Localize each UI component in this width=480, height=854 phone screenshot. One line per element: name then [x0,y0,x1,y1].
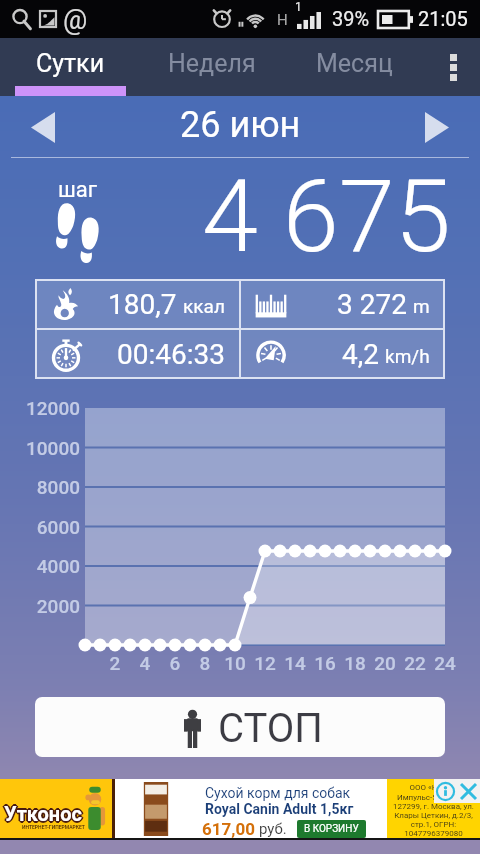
staticText: 21:05 [418,7,468,30]
staticText: ккал [183,295,225,317]
staticText: Утконос [4,800,82,823]
staticText: 20 [370,652,400,674]
staticText: Утконос [4,802,82,825]
staticText: 617,00 [202,819,255,839]
staticText: Утконос [4,803,82,826]
staticText: Утконос [3,803,81,826]
button[interactable]: Сутки [0,38,140,96]
staticText: 26 июн [180,104,301,146]
staticText: 1 [295,0,302,14]
staticText: Утконос [5,802,83,825]
staticText: 10000 [0,437,80,459]
staticText: 4 675 [202,157,451,275]
staticText: Утконос [5,803,83,826]
staticText: 4,2 [342,338,379,371]
button[interactable]: 00:46:33 [36,330,239,378]
staticText: 2 [100,652,130,674]
button[interactable]: 3 272 [241,280,444,328]
staticText: Неделя [168,49,256,78]
staticText: 8000 [0,476,80,498]
button[interactable]: Close ad [457,780,480,803]
staticText: 18 [340,652,370,674]
staticText: Сутки [36,49,105,78]
staticText: 180,7 [108,288,177,321]
staticText: 6 [160,652,190,674]
staticText: СТОП [218,705,323,752]
staticText: Утконос [6,802,84,825]
staticText: 24 [430,652,460,674]
staticText: 14 [280,652,310,674]
staticText: Утконос [4,801,82,824]
staticText: Утконос [2,802,80,825]
staticText: ИНТЕРНЕТ-ГИПЕРМАРКЕТ [22,824,85,830]
staticText: 00:46:33 [117,338,225,371]
staticText: 39% [332,7,370,30]
button[interactable]: Неделя [140,38,283,96]
staticText: шаг [58,177,98,203]
staticText: 6000 [0,516,80,538]
staticText: Royal Canin Adult 1,5кг [205,801,354,817]
staticText: Утконос [3,801,81,824]
button[interactable]: More options [426,38,480,96]
button[interactable]: Месяц [283,38,426,96]
staticText: Месяц [316,49,393,78]
staticText: 22 [400,652,430,674]
button[interactable]: 180,7 [36,280,239,328]
staticText: @ [63,4,88,36]
staticText: руб. [259,820,287,838]
button[interactable]: В КОРЗИНУ [304,823,359,835]
staticText: 12 [250,652,280,674]
button[interactable]: 4,2 [241,330,444,378]
staticText: В КОРЗИНУ [304,823,359,835]
button[interactable]: Next day [416,106,458,148]
staticText: 2000 [0,595,80,617]
button[interactable]: СТОП [35,697,445,757]
staticText: Утконос [5,801,83,824]
staticText: 4 [130,652,160,674]
staticText: ООО «Новый Импульс-50» ЮЛ/А: 127299, г. … [388,783,479,837]
staticText: 8 [190,652,220,674]
staticText: 3 272 [337,288,407,321]
staticText: Утконос [4,804,82,827]
staticText: 16 [310,652,340,674]
button[interactable]: Утконос [0,779,480,840]
button[interactable]: Ad info [434,780,457,803]
staticText: Сухой корм для собак [205,785,351,801]
staticText: 4000 [0,555,80,577]
staticText: 12000 [0,397,80,419]
staticText: H [277,11,288,29]
staticText: Утконос [3,802,81,825]
staticText: m [413,295,430,317]
button[interactable]: Previous day [22,106,64,148]
staticText: km/h [385,345,430,367]
staticText: 10 [220,652,250,674]
